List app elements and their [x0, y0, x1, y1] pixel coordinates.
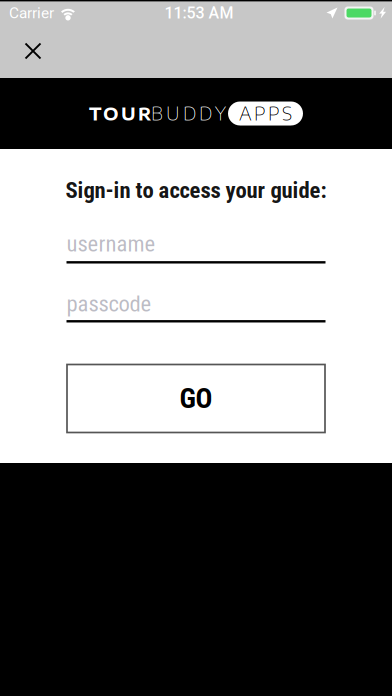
staticText: APPS	[239, 103, 292, 124]
staticText: TOUR	[89, 103, 151, 124]
staticText: Sign-in to access your guide:	[65, 177, 326, 204]
staticText: username	[66, 231, 155, 257]
staticText: BUDDY	[151, 103, 226, 124]
staticText: passcode	[66, 290, 151, 317]
staticText: GO	[179, 382, 212, 415]
button[interactable]: Close	[0, 26, 66, 78]
staticText: Carrier	[9, 4, 54, 22]
button[interactable]: GO	[67, 364, 325, 432]
staticText: 11:53 AM	[164, 4, 233, 22]
